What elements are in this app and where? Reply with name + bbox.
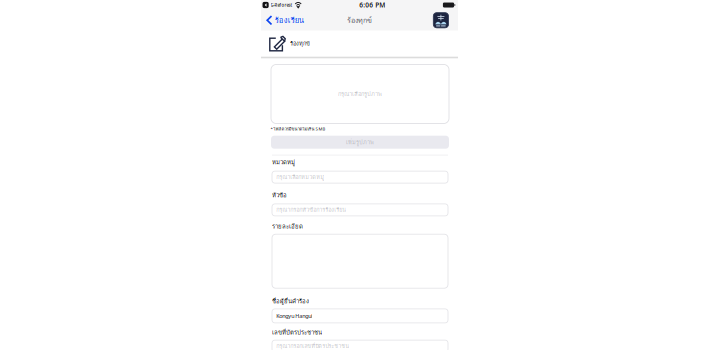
staticText: กรุณากรอกหัวข้อการร้องเรียน: [276, 206, 346, 214]
button[interactable]: กรุณาเลือกหมวดหมู่: [272, 171, 448, 183]
staticText: ชื่อผู้ยื่นคำร้อง: [272, 296, 309, 306]
staticText: หัวข้อ: [272, 190, 287, 200]
button[interactable]: ร้องทุกข์: [261, 30, 458, 57]
staticText: 6:06 PM: [359, 1, 385, 9]
button[interactable]: ร้องเรียน: [261, 10, 304, 30]
staticText: G-Reforest: [270, 2, 292, 8]
button[interactable]: Choose image: [271, 64, 449, 123]
staticText: เลขที่บัตรประชาชน: [272, 328, 322, 337]
staticText: กรุณากรอกเลขที่บัตรประชาชน: [276, 342, 349, 350]
staticText: เพิ่มรูปภาพ: [346, 138, 374, 147]
staticText: ร้องทุกข์: [290, 39, 310, 48]
staticText: หมวดหมู่: [272, 157, 295, 167]
button[interactable]: กรุณากรอกหัวข้อการร้องเรียน: [272, 204, 448, 216]
staticText: * ไฟล์ควรมีขนาดไม่เกิน 5 MB: [270, 126, 325, 132]
staticText: รายละเอียด: [272, 221, 303, 231]
staticText: Kongyu Hangul: [276, 312, 312, 320]
button[interactable]: Kongyu Hangul: [272, 309, 448, 323]
staticText: ร้องทุกข์: [347, 15, 372, 26]
button[interactable]: เพิ่มรูปภาพ: [271, 136, 449, 149]
staticText: ร้องเรียน: [275, 14, 304, 26]
button[interactable]: กรุณากรอกเลขที่บัตรประชาชน: [272, 340, 448, 350]
staticText: กรุณาเลือกหมวดหมู่: [276, 173, 324, 181]
staticText: กรุณาเลือกรูปภาพ: [338, 89, 382, 98]
button[interactable]: G-Reforest app: [433, 13, 448, 28]
